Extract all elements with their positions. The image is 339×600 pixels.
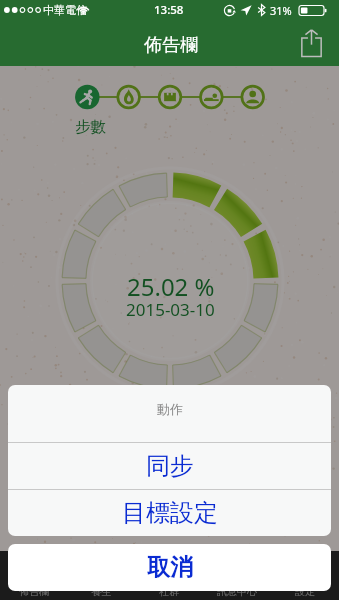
staticText: 佈告欄 (19, 585, 49, 598)
staticText: 取消 (147, 553, 193, 582)
staticText: 設定 (295, 585, 315, 598)
button[interactable]: 取消 (8, 544, 331, 591)
button[interactable]: 社群 (135, 551, 203, 600)
staticText: 同步 (146, 451, 194, 481)
staticText: 31% (270, 3, 292, 18)
staticText: 步數 (75, 117, 106, 137)
button[interactable]: 目標設定 (8, 490, 331, 536)
staticText: 訊息中心 (217, 585, 257, 598)
staticText: 25.02 % (127, 270, 215, 303)
staticText: 養生 (91, 585, 111, 598)
button[interactable]: 佈告欄 (0, 551, 67, 600)
staticText: 中華電信 (43, 3, 87, 17)
staticText: 目標設定 (122, 498, 218, 528)
staticText: 動作 (157, 401, 183, 417)
staticText: 社群 (159, 585, 179, 598)
button[interactable]: Share (291, 23, 331, 63)
staticText: 2015-03-10 (126, 298, 215, 321)
staticText: 佈告欄 (144, 34, 198, 57)
button[interactable]: 同步 (8, 443, 331, 489)
button[interactable]: 訊息中心 (203, 551, 271, 600)
button[interactable]: 設定 (271, 551, 339, 600)
staticText: 13:58 (154, 2, 184, 18)
button[interactable]: 養生 (67, 551, 135, 600)
